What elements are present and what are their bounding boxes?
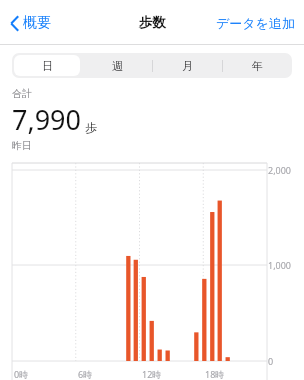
staticText: 0 xyxy=(268,355,274,367)
staticText: 18時 xyxy=(205,368,225,380)
staticText: 7,990 xyxy=(12,101,82,138)
button[interactable]: 月 xyxy=(152,53,222,78)
button[interactable]: 日 xyxy=(12,53,82,78)
button[interactable]: 年 xyxy=(222,53,292,78)
staticText: 0時 xyxy=(14,368,29,380)
staticText: 日 xyxy=(42,59,53,73)
staticText: データを追加 xyxy=(216,15,295,31)
staticText: 合計 xyxy=(12,87,32,100)
staticText: 1,000 xyxy=(268,259,292,271)
staticText: 6時 xyxy=(78,368,93,380)
staticText: 12時 xyxy=(142,368,162,380)
button[interactable]: 週 xyxy=(82,53,152,78)
staticText: 2,000 xyxy=(268,164,292,176)
staticText: 歩数 xyxy=(139,14,166,31)
staticText: 月 xyxy=(182,59,193,73)
staticText: 年 xyxy=(252,59,263,73)
button[interactable]: 概要 xyxy=(6,10,55,36)
staticText: 週 xyxy=(112,59,123,73)
button[interactable]: データを追加 xyxy=(213,11,298,35)
staticText: 昨日 xyxy=(12,139,32,152)
staticText: 概要 xyxy=(23,14,51,32)
staticText: 歩 xyxy=(85,120,97,135)
